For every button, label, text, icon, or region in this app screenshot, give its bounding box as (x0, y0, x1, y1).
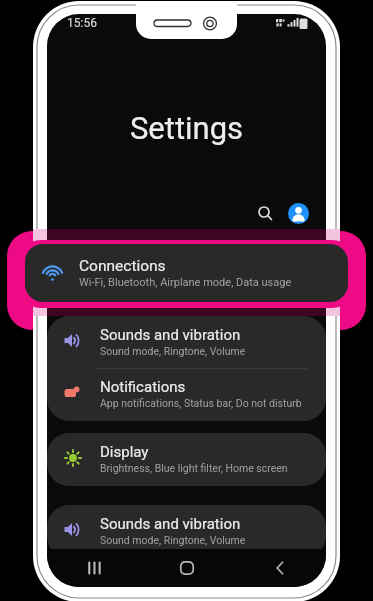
staticText: Sounds and vibration (100, 515, 241, 533)
button[interactable]: Sounds and vibration (47, 317, 326, 368)
button[interactable]: Home (140, 549, 233, 587)
staticText: Wi-Fi, Bluetooth, Airplane mode, Data us… (79, 276, 292, 289)
staticText: Settings (47, 110, 326, 146)
button[interactable]: Back (233, 549, 326, 587)
staticText: Sound mode, Ringtone, Volume (100, 345, 246, 357)
button[interactable]: Account (283, 198, 313, 228)
button[interactable]: Sounds and vibration (47, 506, 326, 557)
button[interactable]: Notifications (47, 369, 326, 420)
staticText: 15:56 (67, 16, 97, 30)
staticText: Brightness, Blue light filter, Home scre… (100, 462, 288, 474)
button[interactable]: Recent apps (47, 549, 140, 587)
button[interactable]: Connections (25, 244, 348, 302)
staticText: Notifications (100, 378, 186, 396)
staticText: Display (100, 443, 149, 461)
button[interactable]: Search (251, 199, 279, 227)
staticText: Connections (79, 257, 166, 275)
button[interactable]: Display (47, 434, 326, 485)
staticText: Sounds and vibration (100, 326, 241, 344)
staticText: App notifications, Status bar, Do not di… (100, 397, 302, 409)
staticText: Sound mode, Ringtone, Volume (100, 534, 246, 546)
